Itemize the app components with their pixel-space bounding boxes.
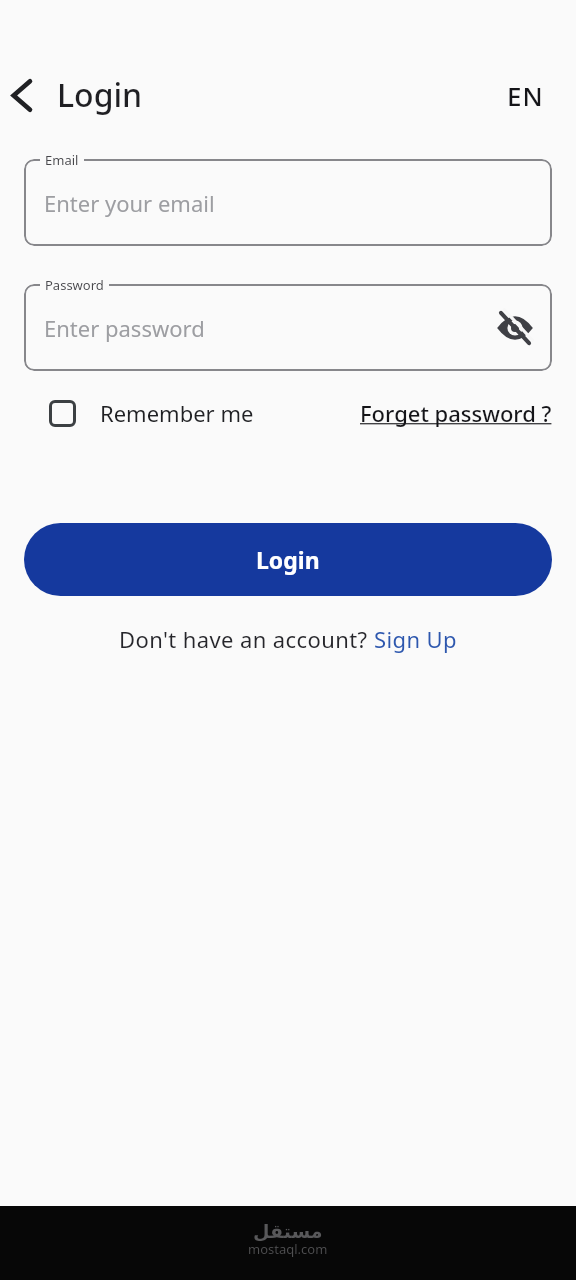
staticText: Password (45, 276, 104, 294)
staticText: مستقل (253, 1220, 323, 1242)
button[interactable]: Forget password ? (360, 398, 552, 428)
staticText: Sign Up (374, 624, 458, 654)
button[interactable]: Sign Up (374, 624, 458, 654)
staticText: mostaql.com (248, 1240, 328, 1258)
button[interactable]: EN (507, 78, 544, 113)
staticText: Remember me (100, 398, 254, 428)
button[interactable]: Enter your email (24, 159, 552, 246)
staticText: EN (507, 78, 544, 113)
button[interactable]: Login (24, 523, 552, 596)
button[interactable]: Enter password (24, 284, 552, 371)
staticText: Login (57, 73, 143, 117)
staticText: Email (45, 151, 79, 169)
staticText: Don't have an account? (119, 624, 374, 654)
button[interactable] (2, 75, 42, 115)
staticText: Enter your email (44, 188, 215, 218)
staticText: Forget password ? (360, 398, 552, 428)
staticText: Enter password (44, 313, 205, 343)
button[interactable] (49, 400, 76, 427)
staticText: Login (256, 544, 320, 575)
